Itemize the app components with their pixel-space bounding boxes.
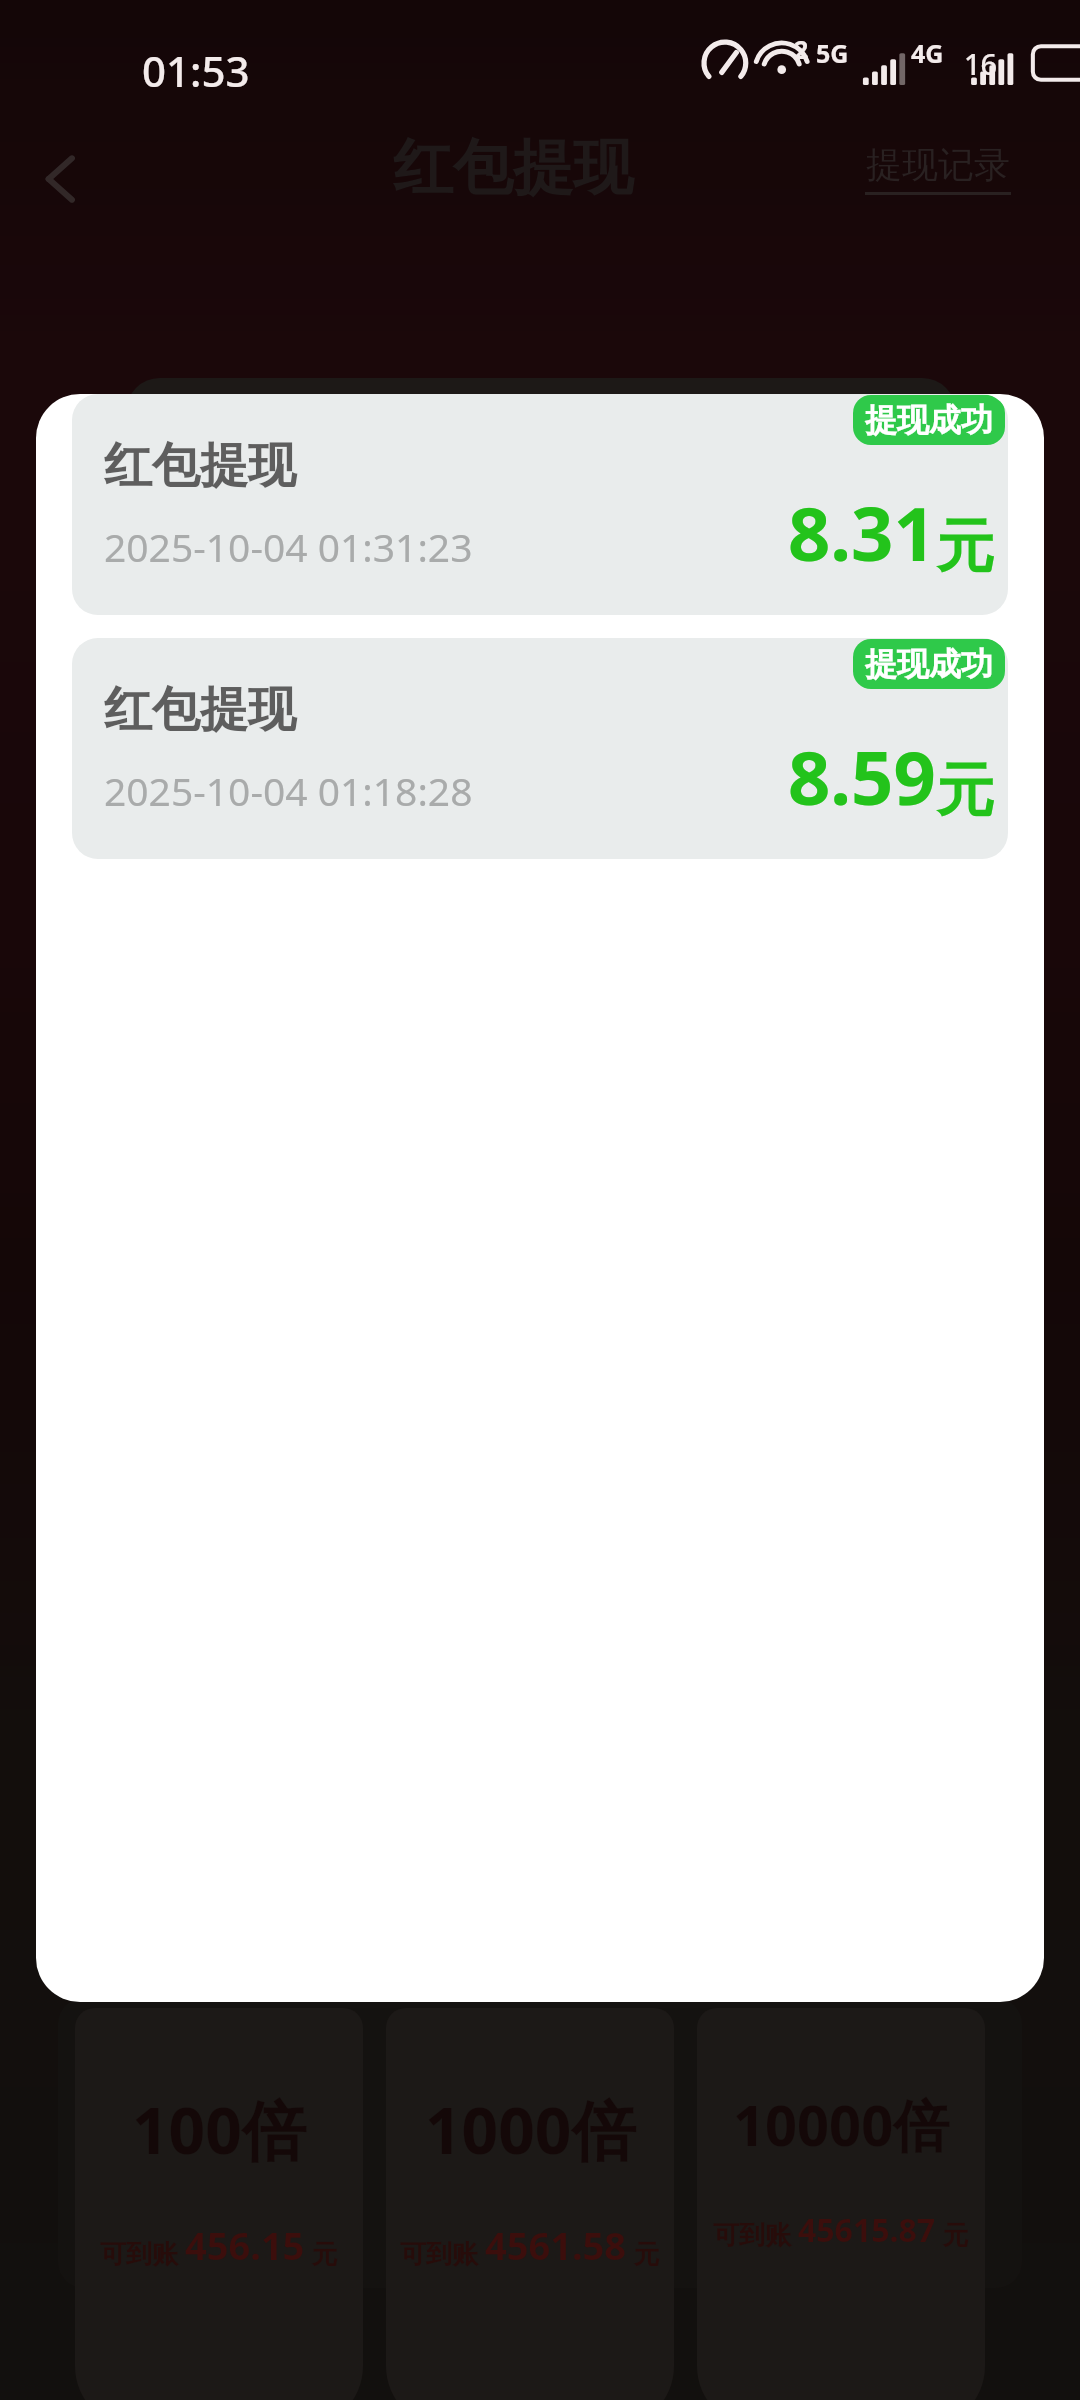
staticText: 16 (964, 44, 998, 83)
staticText: 元 (936, 510, 994, 583)
staticText: 45615.87 (798, 2208, 936, 2252)
staticText: 红包提现 (393, 130, 633, 206)
staticText: 可到账 (713, 2216, 798, 2252)
staticText: 2025-10-04 01:18:28 (104, 764, 473, 817)
staticText: 4561.58 (485, 2219, 627, 2271)
staticText: 可到账 (100, 2235, 185, 2271)
staticText: 4G (911, 36, 944, 70)
staticText: 提现成功 (865, 644, 993, 684)
staticText: 提现记录 (866, 142, 1010, 187)
staticText: 01:53 (142, 42, 250, 99)
button[interactable]: 红包提现 (72, 638, 1008, 859)
staticText: 2 (794, 32, 809, 66)
staticText: 1000倍 (425, 2086, 636, 2173)
staticText: 元 (936, 2216, 969, 2252)
staticText: 提现成功 (865, 400, 993, 440)
button[interactable]: 100倍 (75, 2008, 363, 2400)
staticText: 当前10000元= (332, 598, 564, 647)
button[interactable]: Back (16, 136, 102, 222)
staticText: 2025-10-04 01:31:23 (104, 520, 473, 573)
staticText: 元 (305, 2235, 338, 2271)
staticText: 100倍 (132, 2086, 306, 2173)
staticText: 5G (816, 36, 849, 70)
button[interactable]: 红包提现 (72, 394, 1008, 615)
staticText: 456.15 (185, 2219, 305, 2271)
button[interactable]: 10000倍 (697, 2008, 985, 2400)
button[interactable]: 提现记录 (865, 142, 1011, 195)
staticText: 元 (936, 754, 994, 827)
staticText: 红包余额： (198, 458, 468, 526)
staticText: 红包提现 (104, 436, 296, 496)
staticText: 45615.87元 (550, 455, 836, 529)
staticText: 8.59 (788, 726, 936, 827)
staticText: 红包提现 (104, 680, 296, 740)
button[interactable]: 1000倍 (386, 2008, 674, 2400)
staticText: 可到账 (400, 2235, 485, 2271)
button[interactable]: Close (892, 445, 988, 541)
staticText: 8.31 (788, 482, 936, 583)
staticText: 元 (627, 2235, 660, 2271)
staticText: 到账1.4元 (608, 598, 767, 647)
staticText: 10000倍 (733, 2086, 950, 2162)
